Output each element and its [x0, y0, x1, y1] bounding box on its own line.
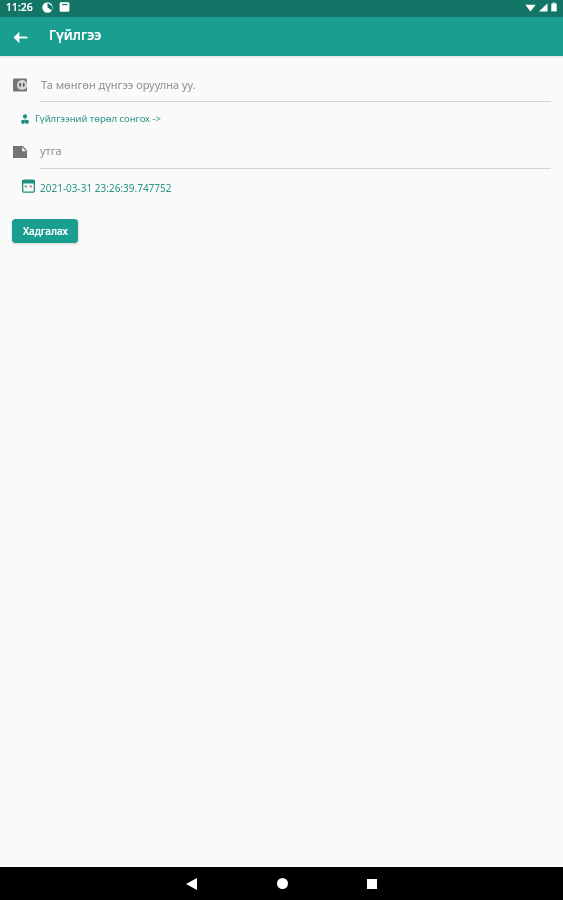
staticText: Та мөнгөн дүнгээ оруулна уу.	[41, 77, 196, 92]
staticText: 11:26	[6, 0, 33, 14]
button[interactable]: утга	[0, 140, 563, 172]
button[interactable]: Back	[161, 867, 221, 900]
staticText: Гүйлгээний төрөл сонгох ->	[35, 112, 161, 125]
button[interactable]: 2021-03-31 23:26:39.747752	[0, 176, 563, 198]
button[interactable]: Та мөнгөн дүнгээ оруулна уу.	[0, 70, 563, 104]
button[interactable]: Home	[252, 867, 312, 900]
staticText: утга	[40, 143, 62, 158]
staticText: 2021-03-31 23:26:39.747752	[40, 181, 172, 195]
staticText: Хадгалах	[23, 224, 68, 238]
staticText: Гүйлгээ	[49, 25, 102, 44]
button[interactable]: Back	[6, 23, 34, 51]
button[interactable]: Гүйлгээний төрөл сонгох ->	[0, 108, 563, 130]
button[interactable]: Recent apps	[342, 867, 402, 900]
button[interactable]: Хадгалах	[12, 219, 78, 243]
